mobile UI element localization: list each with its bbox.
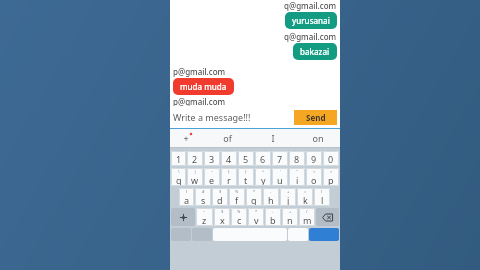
staticText: m (303, 214, 312, 226)
staticText: $ (221, 209, 224, 214)
staticText: 1 (176, 153, 182, 165)
button[interactable]: > (323, 168, 339, 186)
staticText: 0 (328, 153, 334, 165)
button[interactable]: ' (272, 168, 288, 186)
button[interactable]: # (195, 188, 211, 206)
staticText: 2 (192, 153, 198, 165)
button[interactable]: * (248, 208, 264, 226)
staticText: p (328, 174, 334, 186)
staticText: o (311, 174, 317, 186)
staticText: } (245, 169, 247, 174)
staticText: s (201, 194, 206, 206)
staticText: z (202, 214, 207, 226)
staticText: < (313, 169, 316, 174)
staticText: ( (186, 189, 188, 194)
button[interactable]: 7 (272, 151, 288, 166)
button[interactable]: Send (294, 110, 337, 125)
button[interactable]: = (297, 188, 313, 206)
staticText: c (237, 214, 242, 226)
button[interactable]: - (263, 188, 279, 206)
staticText: r (227, 174, 231, 186)
button[interactable]: Shift (171, 208, 195, 226)
staticText: h (268, 194, 274, 206)
staticText: v (254, 214, 259, 226)
button[interactable]: 9 (306, 151, 322, 166)
button[interactable]: " (289, 168, 305, 186)
button[interactable]: 1 (171, 151, 186, 166)
staticText: d (217, 194, 223, 206)
staticText: p@gmail.com (173, 96, 226, 106)
button[interactable]: Enter (309, 228, 339, 241)
button[interactable]: 8 (289, 151, 305, 166)
staticText: on (312, 132, 324, 144)
staticText: y (261, 174, 266, 186)
staticText: 5 (243, 153, 249, 165)
staticText: 3 (209, 153, 215, 165)
button[interactable]: 3 (204, 151, 220, 166)
button[interactable]: $ (214, 208, 230, 226)
button[interactable]: } (238, 168, 254, 186)
button[interactable]: * (246, 188, 262, 206)
button[interactable]: ~ (196, 208, 213, 226)
button[interactable]: on (295, 129, 340, 147)
staticText: f (235, 194, 239, 206)
staticText: 4 (226, 153, 232, 165)
button[interactable]: - (265, 208, 281, 226)
button[interactable]: muda muda (173, 78, 234, 95)
staticText: u (277, 174, 283, 186)
staticText: + (183, 132, 189, 144)
staticText: t (244, 174, 248, 186)
button[interactable]: $ (212, 188, 228, 206)
button[interactable]: bakazai (293, 43, 337, 60)
button[interactable]: + (280, 188, 296, 206)
button[interactable]: I (250, 129, 295, 147)
staticText: q@gmail.com (284, 0, 337, 11)
button[interactable]: / (299, 208, 315, 226)
button[interactable]: % (229, 188, 245, 206)
staticText: a (184, 194, 190, 206)
staticText: + (287, 189, 290, 194)
button[interactable]: ^ (255, 168, 271, 186)
button[interactable]: { (221, 168, 237, 186)
staticText: ' (280, 169, 281, 174)
staticText: Write a message!!! (173, 111, 251, 123)
staticText: muda muda (180, 81, 227, 92)
button[interactable]: | (187, 168, 203, 186)
staticText: ~ (211, 169, 214, 174)
staticText: / (306, 209, 308, 214)
button[interactable]: Period (288, 228, 308, 241)
staticText: e (209, 174, 215, 186)
staticText: * (255, 209, 258, 214)
button[interactable]: % (231, 208, 247, 226)
staticText: x (220, 214, 225, 226)
staticText: - (270, 189, 272, 194)
staticText: p@gmail.com (173, 66, 226, 77)
button[interactable]: \ (171, 168, 186, 186)
staticText: * (253, 189, 256, 194)
button[interactable]: 0 (323, 151, 339, 166)
button[interactable]: Write a message!!! (173, 111, 290, 123)
button[interactable]: < (306, 168, 322, 186)
button[interactable]: ) (314, 188, 330, 206)
staticText: " (296, 169, 298, 174)
button[interactable]: yurusanai (285, 12, 337, 29)
staticText: l (321, 194, 324, 206)
button[interactable]: 5 (238, 151, 254, 166)
button[interactable]: + (282, 208, 298, 226)
staticText: j (287, 194, 290, 206)
staticText: ) (321, 189, 323, 194)
button[interactable]: of (205, 129, 250, 147)
button[interactable]: 2 (187, 151, 203, 166)
staticText: w (191, 174, 199, 186)
staticText: % (235, 189, 239, 194)
button[interactable]: 4 (221, 151, 237, 166)
button[interactable]: 6 (255, 151, 271, 166)
staticText: > (330, 169, 333, 174)
button[interactable]: Backspace (316, 208, 339, 226)
button[interactable]: ~ (204, 168, 220, 186)
button[interactable]: ( (179, 188, 194, 206)
button[interactable]: + (170, 129, 205, 147)
